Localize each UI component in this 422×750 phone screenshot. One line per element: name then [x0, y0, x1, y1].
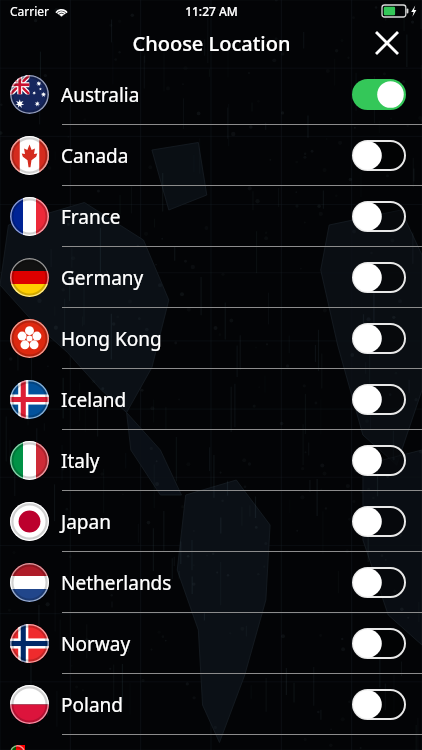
button[interactable]: Disabled	[352, 567, 406, 598]
button[interactable]: Disabled	[352, 506, 406, 537]
button[interactable]: Enabled	[352, 79, 406, 110]
staticText: Choose Location	[132, 30, 291, 57]
staticText: Poland	[61, 692, 123, 718]
button[interactable]: Disabled	[352, 689, 406, 720]
button[interactable]: Disabled	[352, 384, 406, 415]
button[interactable]: Italy	[0, 430, 422, 491]
staticText: Canada	[61, 143, 129, 169]
staticText: Australia	[61, 82, 140, 108]
button[interactable]: France	[0, 186, 422, 247]
staticText: Iceland	[61, 387, 127, 413]
button[interactable]: Japan	[0, 491, 422, 552]
staticText: Norway	[61, 631, 131, 657]
staticText: 11:27 AM	[185, 3, 238, 19]
staticText: Japan	[61, 509, 111, 535]
button[interactable]: Germany	[0, 247, 422, 308]
button[interactable]: Australia	[0, 64, 422, 125]
button[interactable]: Hong Kong	[0, 308, 422, 369]
staticText: Germany	[61, 265, 144, 291]
button[interactable]: Disabled	[352, 201, 406, 232]
button[interactable]: Poland	[0, 674, 422, 735]
staticText: Hong Kong	[61, 326, 162, 352]
button[interactable]: Close	[370, 26, 404, 60]
button[interactable]: Iceland	[0, 369, 422, 430]
staticText: Carrier	[10, 3, 50, 19]
button[interactable]: Disabled	[352, 262, 406, 293]
button[interactable]: Disabled	[352, 140, 406, 171]
staticText: Netherlands	[61, 570, 172, 596]
button[interactable]: Canada	[0, 125, 422, 186]
button[interactable]: Netherlands	[0, 552, 422, 613]
staticText: Italy	[61, 448, 100, 474]
button[interactable]: Disabled	[352, 628, 406, 659]
staticText: France	[61, 204, 121, 230]
button[interactable]: Disabled	[352, 445, 406, 476]
button[interactable]: Disabled	[352, 323, 406, 354]
button[interactable]: Norway	[0, 613, 422, 674]
